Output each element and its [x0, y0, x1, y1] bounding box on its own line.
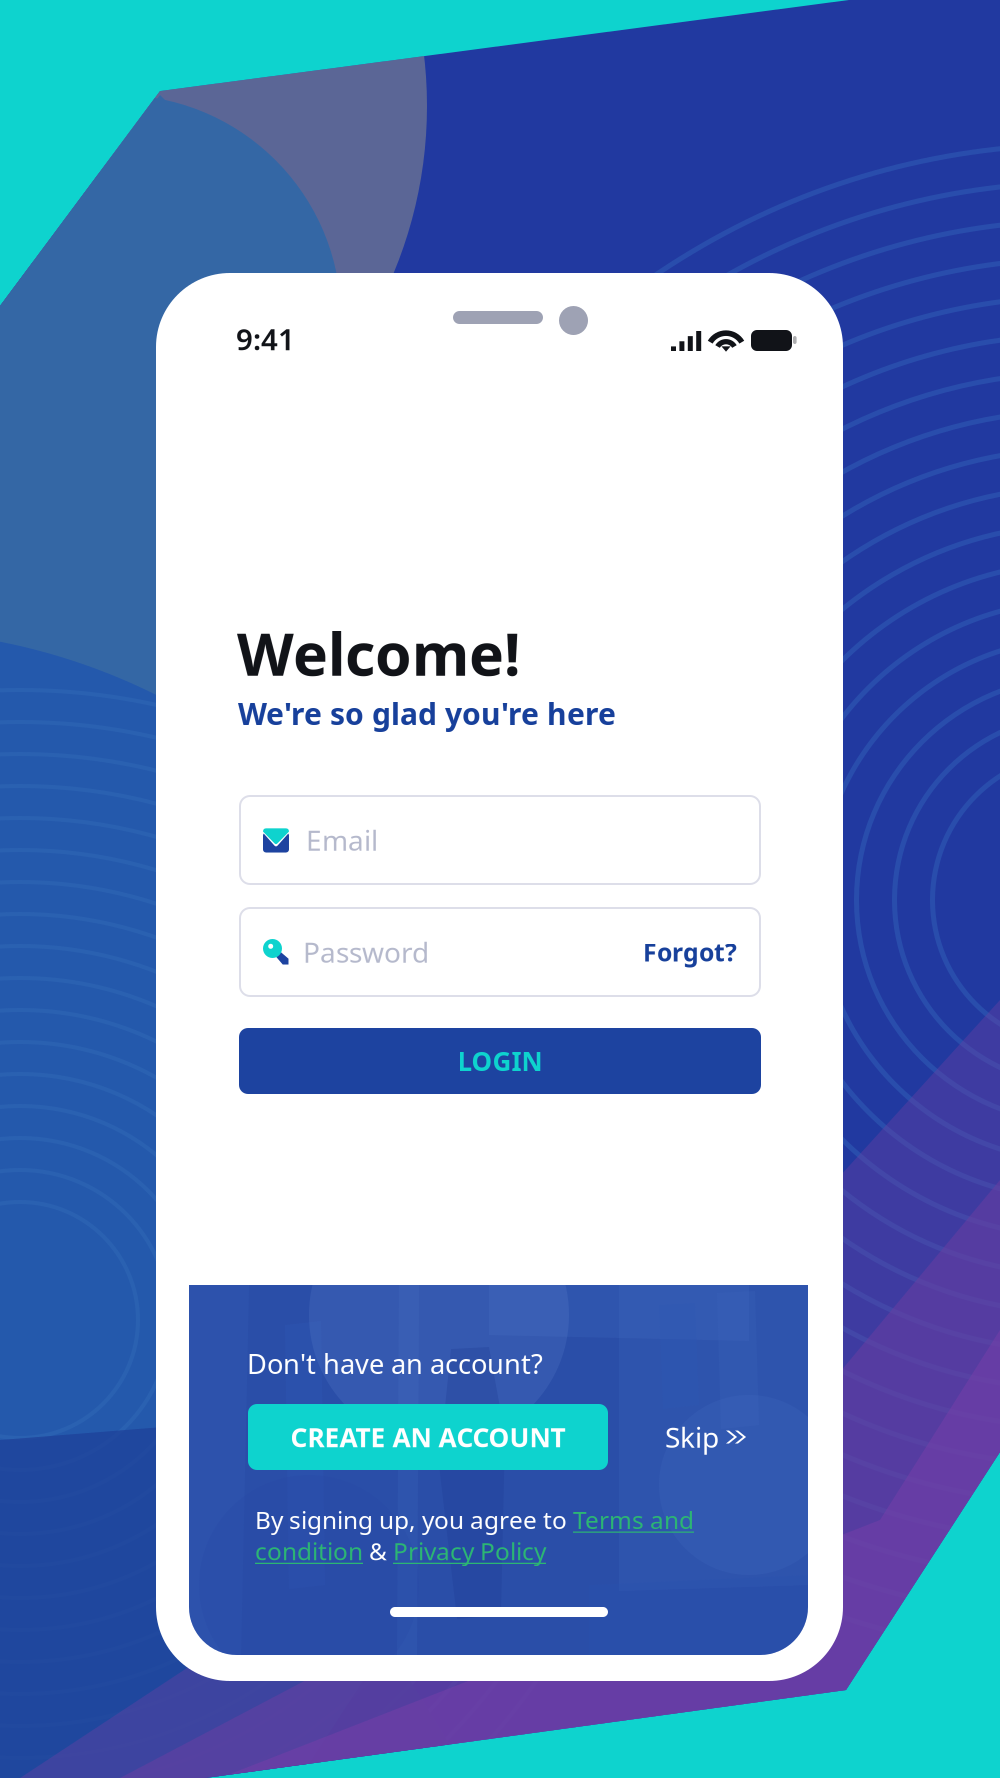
- staticText: Skip: [665, 1418, 719, 1456]
- staticText: 9:41: [236, 319, 295, 359]
- button[interactable]: Terms and: [573, 1503, 694, 1536]
- button[interactable]: Skip: [651, 1404, 751, 1470]
- staticText: We're so glad you're here: [238, 693, 616, 734]
- button[interactable]: LOGIN: [239, 1028, 761, 1094]
- staticText: Welcome!: [237, 613, 521, 693]
- button[interactable]: CREATE AN ACCOUNT: [248, 1404, 608, 1470]
- staticText: Email: [306, 821, 378, 859]
- staticText: Don't have an account?: [247, 1345, 543, 1382]
- staticText: Password: [303, 933, 429, 971]
- staticText: Terms and: [573, 1503, 694, 1536]
- staticText: By signing up, you agree to: [255, 1503, 573, 1536]
- button[interactable]: Privacy Policy: [393, 1534, 546, 1567]
- staticText: LOGIN: [457, 1043, 542, 1079]
- staticText: CREATE AN ACCOUNT: [290, 1419, 565, 1455]
- staticText: Privacy Policy: [393, 1534, 546, 1567]
- button[interactable]: condition: [255, 1534, 363, 1567]
- staticText: Forgot?: [643, 935, 737, 969]
- button[interactable]: Forgot?: [643, 917, 737, 987]
- staticText: &: [363, 1534, 393, 1567]
- staticText: condition: [255, 1534, 363, 1567]
